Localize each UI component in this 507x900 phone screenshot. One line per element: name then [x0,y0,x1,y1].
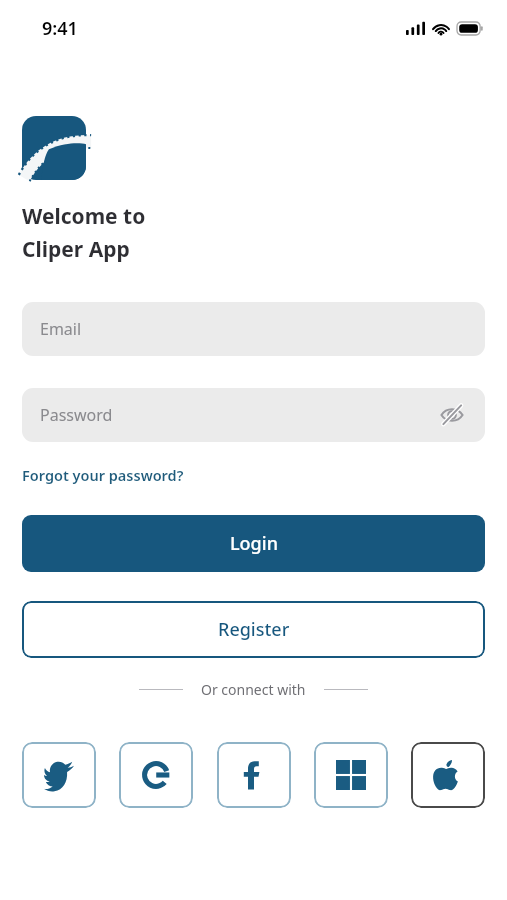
button[interactable]: Forgot your password? [22,465,184,485]
staticText: Register [218,617,290,642]
staticText: Cliper App [22,235,130,264]
staticText: Email [40,318,82,340]
button[interactable]: Sign in with Microsoft [314,742,388,808]
staticText: Forgot your password? [22,465,184,485]
button[interactable]: Email [22,302,485,356]
staticText: Password [40,404,113,426]
button[interactable]: Sign in with Facebook [217,742,291,808]
button[interactable]: Sign in with Twitter [22,742,96,808]
button[interactable]: Sign in with Google [119,742,193,808]
button[interactable]: Show password [437,400,467,430]
staticText: Or connect with [201,680,306,699]
button[interactable]: Login [22,515,485,572]
button[interactable]: Password [22,388,485,442]
staticText: Login [230,531,278,556]
button[interactable]: Sign in with Apple [411,742,485,808]
staticText: Welcome to [22,202,146,231]
other: Cliper App logo [22,116,86,180]
staticText: 9:41 [42,16,78,41]
button[interactable]: Register [22,601,485,658]
